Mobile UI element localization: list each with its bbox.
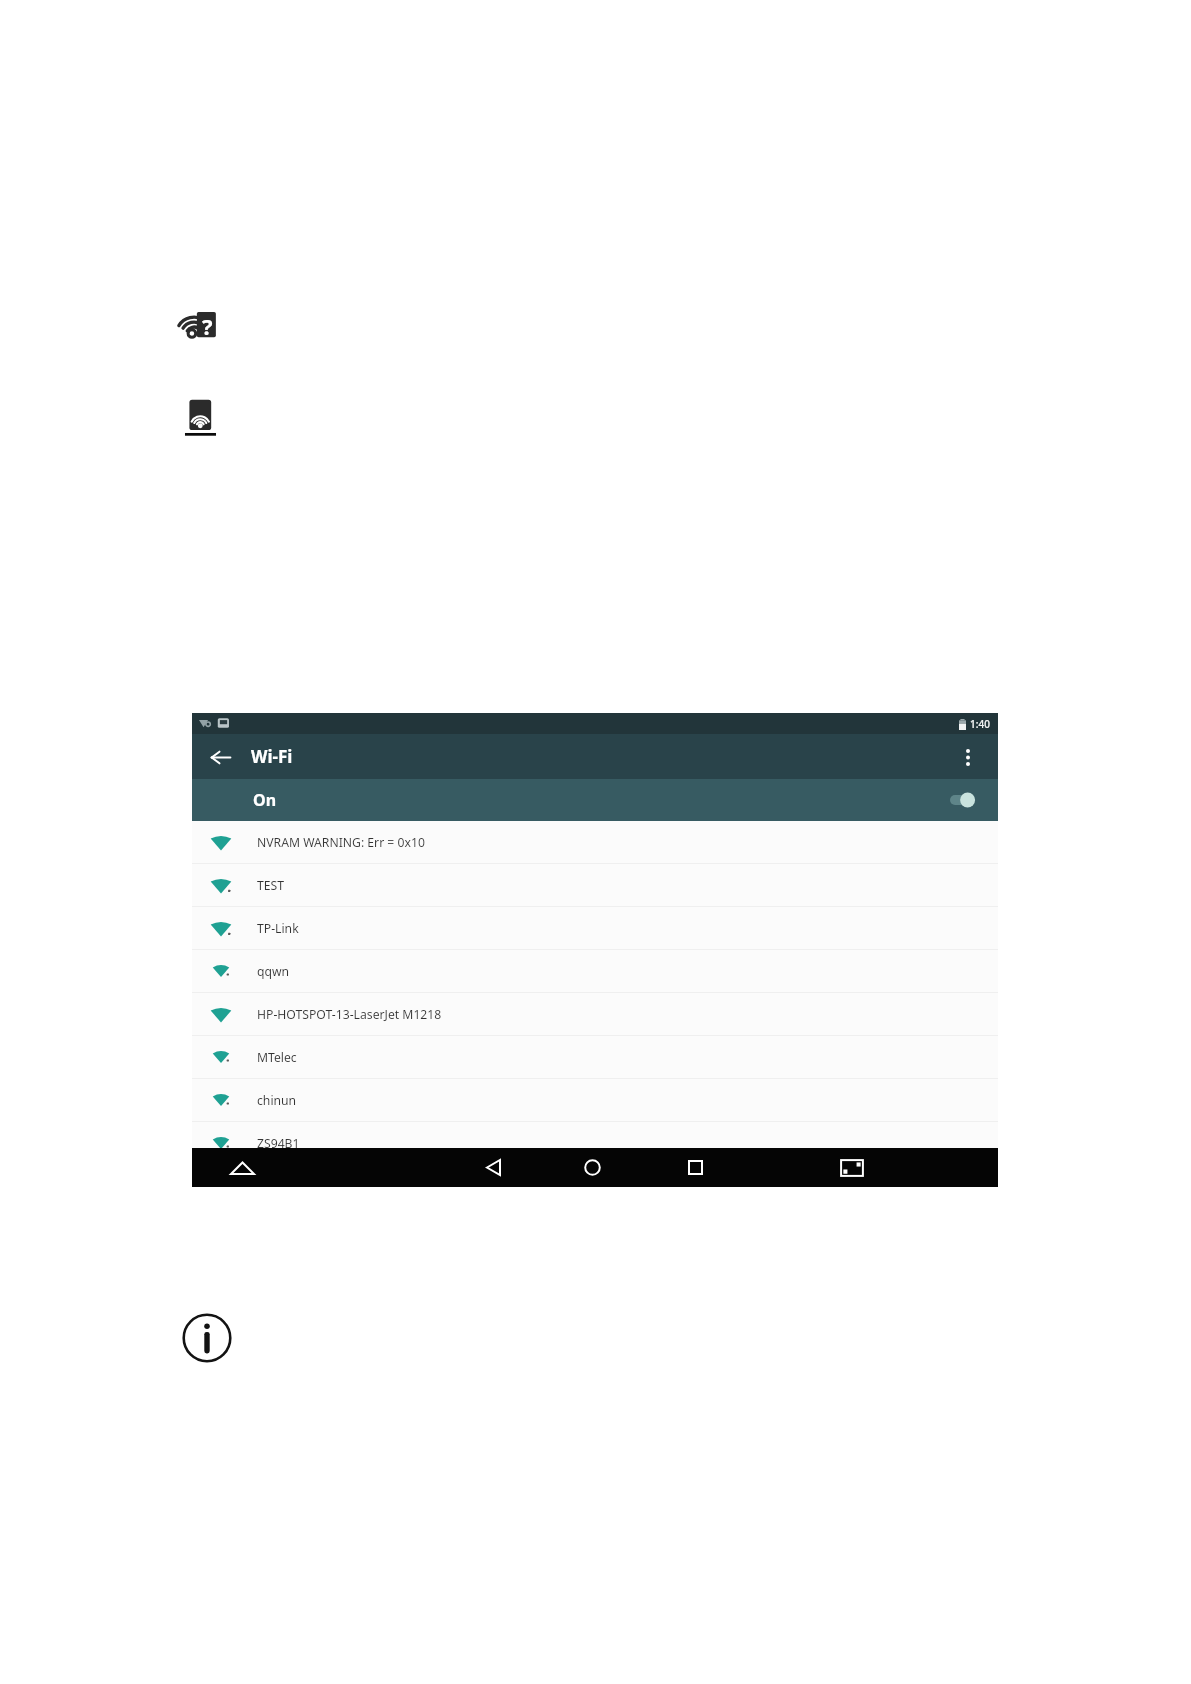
staticText: Wi-Fi xyxy=(251,745,293,768)
staticText: MTelec xyxy=(257,1049,297,1066)
button[interactable]: TEST xyxy=(192,864,998,907)
staticText: HP-HOTSPOT-13-LaserJet M1218 xyxy=(257,1006,442,1023)
staticText: chinun xyxy=(257,1092,297,1109)
button[interactable]: ZS94B1 xyxy=(192,1122,998,1165)
staticText: TP-Link xyxy=(257,920,299,937)
button[interactable]: Navigate up xyxy=(225,1148,259,1187)
button[interactable]: Recent apps xyxy=(678,1148,712,1187)
button[interactable]: More options xyxy=(954,743,982,771)
staticText: On xyxy=(253,789,277,811)
button[interactable]: Back xyxy=(476,1148,510,1187)
staticText: TEST xyxy=(257,877,285,894)
button[interactable]: NVRAM WARNING: Err = 0x10 xyxy=(192,821,998,864)
staticText: NVRAM WARNING: Err = 0x10 xyxy=(257,834,425,851)
button[interactable]: MTelec xyxy=(192,1036,998,1079)
button[interactable]: Screenshot xyxy=(835,1148,869,1187)
button[interactable]: TP-Link xyxy=(192,907,998,950)
button[interactable]: Home xyxy=(575,1148,609,1187)
staticText: ? xyxy=(202,311,213,341)
button[interactable]: On xyxy=(192,779,998,821)
staticText: 1:40 xyxy=(970,717,990,731)
button[interactable]: chinun xyxy=(192,1079,998,1122)
button[interactable]: HP-HOTSPOT-13-LaserJet M1218 xyxy=(192,993,998,1036)
button[interactable]: qqwn xyxy=(192,950,998,993)
button[interactable]: Navigate up xyxy=(205,742,235,772)
staticText: ZS94B1 xyxy=(257,1135,300,1152)
staticText: qqwn xyxy=(257,963,290,980)
